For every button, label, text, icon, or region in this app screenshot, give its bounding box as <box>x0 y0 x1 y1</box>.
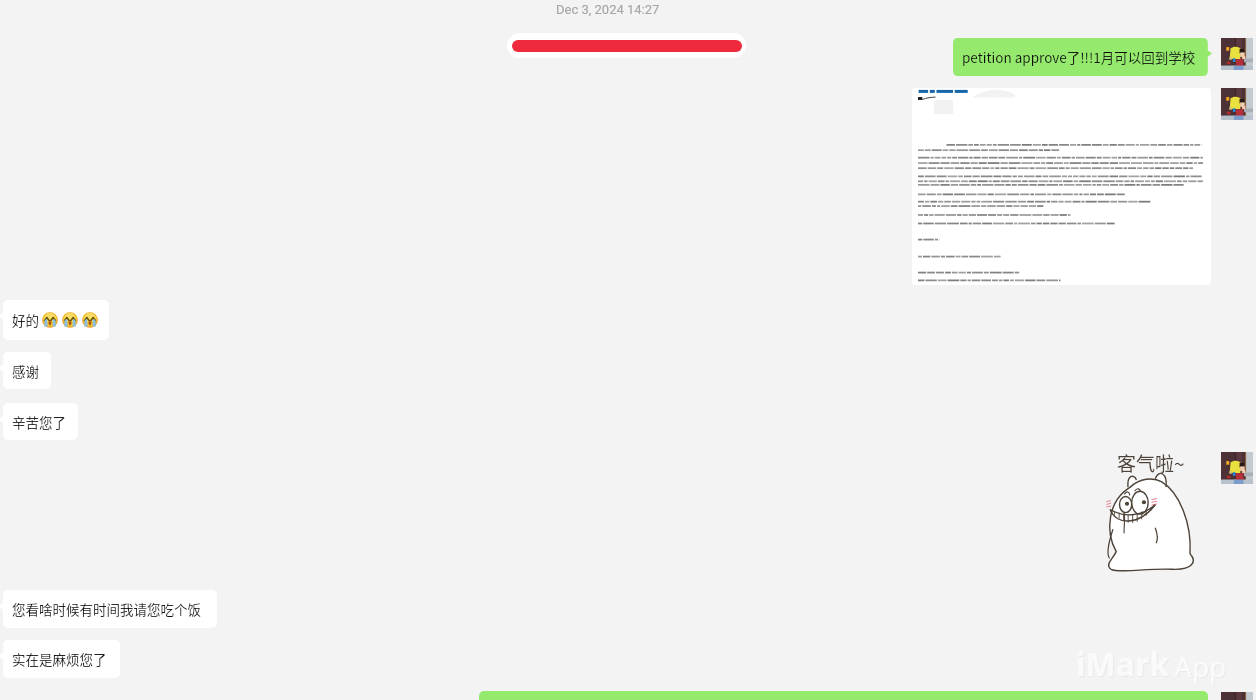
staticText: 感谢 <box>12 361 39 381</box>
button[interactable]: 好的 <box>3 300 109 340</box>
staticText: App <box>1175 648 1228 686</box>
staticText: 辛苦您了 <box>12 412 66 432</box>
staticText: App <box>1175 648 1228 686</box>
button[interactable]: Avatar <box>1221 88 1253 120</box>
button[interactable]: Sticker <box>1100 448 1202 576</box>
button[interactable]: Redacted message <box>507 33 746 58</box>
staticText: petition approve了!!!1月可以回到学校 <box>962 47 1196 67</box>
staticText: Dec 3, 2024 14:27 <box>556 2 660 17</box>
button[interactable] <box>479 691 1208 700</box>
button[interactable]: petition approve了!!!1月可以回到学校 <box>953 38 1212 76</box>
button[interactable]: 感谢 <box>3 352 51 389</box>
staticText: iMark <box>1076 642 1170 686</box>
button[interactable]: 您看啥时候有时间我请您吃个饭 <box>3 590 217 628</box>
staticText: iMark <box>1077 643 1171 687</box>
button[interactable]: Avatar <box>1221 452 1253 484</box>
button[interactable]: 实在是麻烦您了 <box>3 640 120 678</box>
button[interactable]: Email screenshot <box>912 88 1211 285</box>
staticText: 客气啦~ <box>1117 449 1185 477</box>
staticText: 好的 <box>12 310 39 330</box>
staticText: App <box>1174 647 1227 685</box>
button[interactable]: 辛苦您了 <box>3 403 78 440</box>
staticText: 您看啥时候有时间我请您吃个饭 <box>12 599 201 619</box>
button[interactable]: Avatar <box>1221 692 1253 700</box>
staticText: iMark <box>1077 643 1171 687</box>
staticText: 实在是麻烦您了 <box>12 649 107 669</box>
button[interactable]: Avatar <box>1221 38 1253 70</box>
